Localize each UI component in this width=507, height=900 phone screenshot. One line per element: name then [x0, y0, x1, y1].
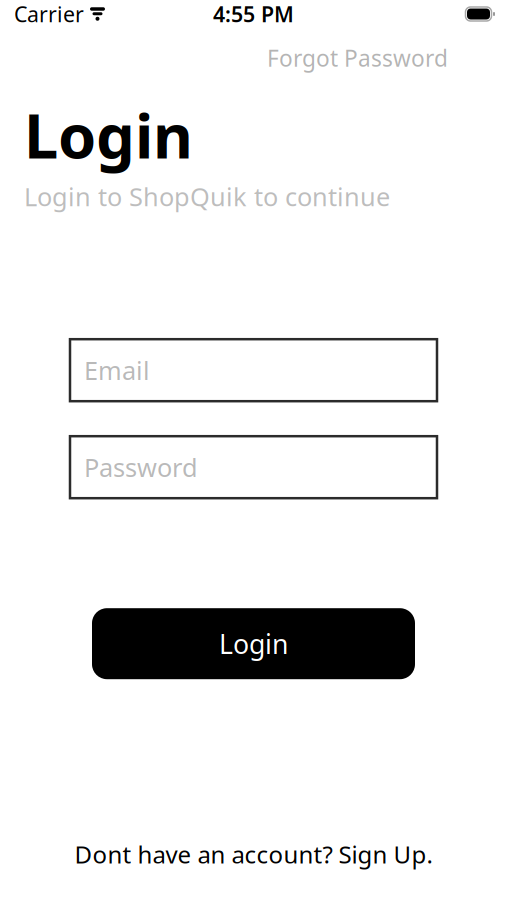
staticText: Dont have an account? Sign Up.: [74, 838, 432, 870]
staticText: Login to ShopQuik to continue: [24, 179, 390, 213]
staticText: Forgot Password: [267, 43, 448, 73]
staticText: 4:55 PM: [213, 0, 294, 28]
staticText: Carrier: [14, 0, 84, 28]
button[interactable]: Dont have an account? Sign Up.: [66, 832, 440, 876]
staticText: Password: [84, 450, 198, 484]
button[interactable]: Login: [92, 608, 415, 679]
staticText: Email: [84, 353, 150, 387]
button[interactable]: Forgot Password: [263, 38, 452, 78]
staticText: Login: [219, 626, 288, 661]
staticText: Login: [24, 94, 193, 175]
